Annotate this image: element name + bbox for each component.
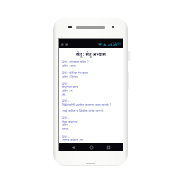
button[interactable]: Home — [88, 144, 95, 151]
staticText: पैसा कशाला — [62, 119, 78, 124]
staticText: प्रश्न :- — [62, 115, 70, 120]
staticText: उत्तर : — [62, 122, 70, 127]
staticText: उत्तर : हिरवा — [62, 74, 78, 79]
staticText: आई वडील व शिक्षक यांचा मान ठे — [62, 108, 104, 113]
button[interactable]: Recent apps — [105, 144, 112, 151]
button[interactable]: Back — [70, 144, 77, 151]
staticText: उत्तर : वाघ — [62, 63, 76, 68]
staticText: प्रश्न : जंगलात कोण ? — [62, 59, 89, 64]
staticText: प्रश्न : — [62, 81, 69, 86]
staticText: प्रश्न : पेरूचा रंग काय — [62, 70, 88, 75]
staticText: सेतू : सेतू अभ्यास — [76, 51, 106, 57]
staticText: 11:56 — [113, 42, 122, 46]
staticText: उत्तर : न — [62, 88, 73, 93]
staticText: प्रश्न :- — [62, 98, 70, 103]
staticText: विद्यार्थ्यांनी शाळेत जाताना काय करावे ? — [62, 102, 111, 107]
staticText: गरज. — [62, 126, 69, 131]
staticText: मैदानात काय — [62, 84, 79, 89]
staticText: प्रश्न :- — [62, 134, 70, 139]
staticText: ती. — [62, 92, 66, 97]
staticText: आनंद कशात आ — [62, 137, 83, 142]
